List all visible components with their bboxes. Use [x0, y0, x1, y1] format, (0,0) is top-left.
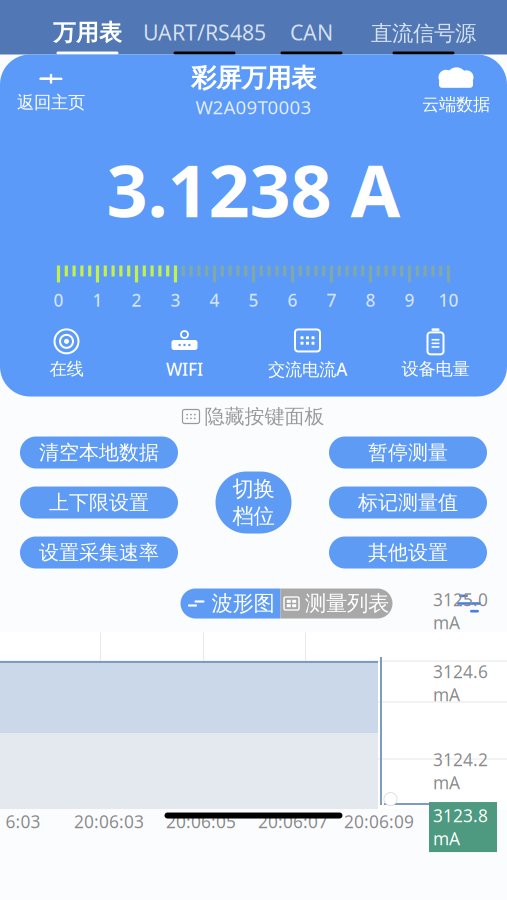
staticText: 返回主页 — [17, 92, 85, 113]
staticText: 20:06:07 — [258, 810, 328, 833]
staticText: 20:06:05 — [166, 810, 236, 833]
button[interactable]: 万用表 — [35, 0, 139, 54]
staticText: 暂停测量 — [368, 440, 448, 465]
button[interactable]: 测量列表 — [280, 588, 392, 618]
staticText: 3 — [170, 288, 180, 311]
staticText: 3123.8 mA — [433, 804, 493, 850]
staticText: 6 — [287, 288, 297, 311]
button[interactable]: 全屏显示 — [447, 586, 491, 620]
staticText: 隐藏按键面板 — [204, 404, 324, 429]
staticText: W2A09T0003 — [195, 95, 311, 119]
button[interactable]: UART/RS485 — [139, 0, 269, 54]
staticText: 万用表 — [53, 19, 122, 46]
staticText: 1 — [92, 288, 102, 311]
staticText: 档位 — [232, 503, 274, 529]
staticText: 在线 — [49, 358, 83, 380]
button[interactable]: 标记测量值 — [329, 486, 487, 518]
staticText: WIFI — [166, 357, 203, 380]
staticText: 3.1238 A — [106, 141, 400, 237]
staticText: CAN — [290, 18, 333, 46]
button[interactable]: CAN — [269, 0, 353, 54]
button[interactable]: 切换 — [215, 471, 291, 533]
button[interactable]: 返回主页 — [12, 67, 90, 115]
button[interactable]: 波形图 — [180, 588, 280, 618]
staticText: 测量列表 — [305, 590, 389, 617]
staticText: 5 — [248, 288, 258, 311]
staticText: 6:03 — [5, 810, 40, 833]
button[interactable]: 直流信号源 — [353, 0, 493, 54]
staticText: 0 — [53, 288, 63, 311]
button[interactable]: 上下限设置 — [20, 486, 178, 518]
button[interactable]: 清空本地数据 — [20, 436, 178, 468]
staticText: 切换 — [232, 476, 274, 502]
staticText: 10 — [438, 288, 458, 311]
staticText: 交流电流A — [268, 357, 347, 380]
staticText: 彩屏万用表 — [191, 62, 316, 94]
button[interactable]: 设置采集速率 — [20, 536, 178, 568]
staticText: 标记测量值 — [358, 490, 458, 515]
staticText: 其他设置 — [368, 540, 448, 565]
staticText: 3125.0 mA — [433, 588, 493, 634]
staticText: 波形图 — [211, 590, 274, 617]
staticText: 上下限设置 — [49, 490, 149, 515]
button[interactable]: 暂停测量 — [329, 436, 487, 468]
button[interactable]: 云端数据 — [417, 67, 495, 115]
button[interactable]: 其他设置 — [329, 536, 487, 568]
staticText: 20:06:03 — [74, 810, 144, 833]
staticText: 直流信号源 — [371, 20, 476, 46]
staticText: 设备电量 — [401, 358, 469, 380]
staticText: 云端数据 — [422, 94, 490, 115]
staticText: 7 — [326, 288, 336, 311]
staticText: 设置采集速率 — [39, 540, 159, 565]
staticText: 20:06:09 — [344, 810, 414, 833]
staticText: UART/RS485 — [143, 18, 266, 46]
staticText: 3124.2 mA — [433, 748, 493, 794]
staticText: 2 — [131, 288, 141, 311]
staticText: 9 — [404, 288, 414, 311]
staticText: 清空本地数据 — [39, 440, 159, 465]
staticText: 8 — [365, 288, 375, 311]
staticText: 3124.6 mA — [433, 660, 493, 706]
staticText: 4 — [209, 288, 219, 311]
button[interactable]: 隐藏按键面板 — [182, 402, 324, 430]
